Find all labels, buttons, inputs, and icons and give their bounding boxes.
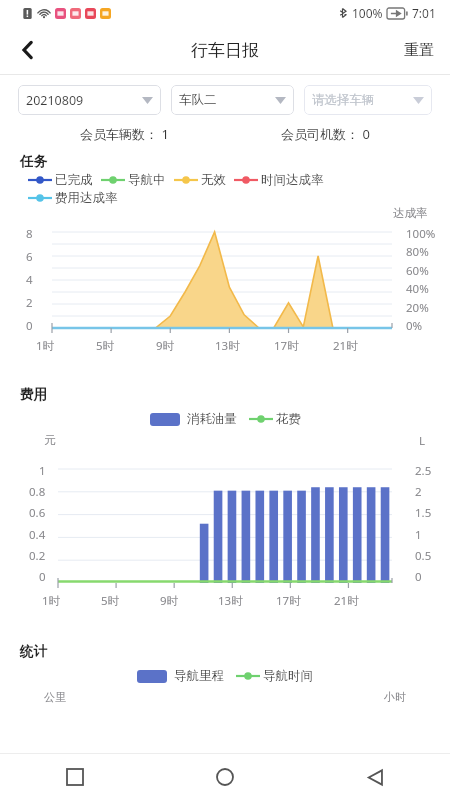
staticText: 导航中 (128, 172, 166, 188)
staticText: 导航时间 (263, 668, 313, 684)
staticText: 请选择车辆 (312, 92, 375, 108)
staticText: 元 (44, 433, 56, 447)
staticText: 0% (406, 318, 423, 334)
staticText: 0.5 (415, 548, 432, 564)
staticText: 行车日报 (191, 40, 259, 61)
staticText: 达成率 (393, 206, 428, 220)
staticText: 1.5 (415, 505, 432, 521)
staticText: 1时 (36, 338, 55, 354)
button[interactable]: Recent apps (0, 754, 150, 800)
staticText: 100% (406, 226, 436, 242)
staticText: 消耗油量 (187, 411, 237, 427)
staticText: 0.8 (29, 484, 46, 500)
staticText: 车队二 (179, 92, 217, 108)
button[interactable]: 20210809 (18, 85, 161, 115)
button[interactable]: Back (300, 754, 450, 800)
staticText: 公里 (44, 690, 66, 704)
staticText: 5时 (96, 338, 115, 354)
staticText: 2 (415, 484, 422, 500)
staticText: 80% (406, 244, 429, 260)
staticText: 40% (406, 281, 429, 297)
staticText: 时间达成率 (261, 172, 324, 188)
button[interactable]: 重置 (388, 29, 450, 72)
staticText: 小时 (384, 690, 406, 704)
staticText: 0 (415, 569, 422, 585)
staticText: 17时 (274, 338, 299, 354)
staticText: 统计 (20, 643, 47, 660)
staticText: 0 (26, 318, 33, 334)
staticText: 6 (26, 249, 33, 265)
staticText: L (419, 433, 426, 449)
staticText: 会员车辆数： 1 (80, 125, 169, 143)
staticText: 4 (26, 272, 33, 288)
staticText: 花费 (276, 411, 301, 427)
staticText: 17时 (276, 593, 301, 609)
staticText: 2.5 (415, 463, 432, 479)
button[interactable]: 请选择车辆 (304, 85, 432, 115)
staticText: 无效 (201, 172, 226, 188)
staticText: 1 (415, 527, 422, 543)
button[interactable]: Home (150, 754, 300, 800)
staticText: 0 (39, 569, 46, 585)
staticText: 13时 (218, 593, 243, 609)
staticText: 任务 (20, 153, 47, 170)
staticText: 会员司机数： 0 (281, 125, 370, 143)
staticText: 重置 (404, 41, 434, 60)
staticText: 20210809 (26, 92, 84, 109)
staticText: 费用 (20, 386, 47, 403)
staticText: 1时 (42, 593, 61, 609)
staticText: 2 (26, 295, 33, 311)
staticText: 5时 (101, 593, 120, 609)
staticText: 已完成 (55, 172, 93, 188)
staticText: 7:01 (412, 5, 436, 21)
staticText: 9时 (156, 338, 175, 354)
button[interactable]: 车队二 (171, 85, 294, 115)
staticText: 9时 (160, 593, 179, 609)
staticText: 费用达成率 (55, 190, 118, 206)
staticText: 60% (406, 263, 429, 279)
staticText: 8 (26, 226, 33, 242)
staticText: 13时 (215, 338, 240, 354)
button[interactable]: Back (6, 28, 50, 72)
staticText: 0.6 (29, 505, 46, 521)
staticText: 100% (352, 5, 383, 21)
staticText: 0.2 (29, 548, 46, 564)
staticText: 导航里程 (174, 668, 224, 684)
staticText: 0.4 (29, 527, 46, 543)
staticText: 1 (39, 463, 46, 479)
staticText: 21时 (334, 593, 359, 609)
staticText: 20% (406, 300, 429, 316)
staticText: 21时 (333, 338, 358, 354)
